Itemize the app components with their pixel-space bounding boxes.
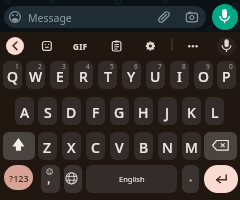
- button[interactable]: [108, 38, 124, 54]
- button[interactable]: G: [110, 97, 129, 125]
- button[interactable]: [3, 132, 35, 160]
- button[interactable]: [184, 38, 200, 54]
- button[interactable]: [142, 38, 158, 54]
- button[interactable]: K: [182, 97, 201, 125]
- button[interactable]: [204, 165, 238, 193]
- staticText: J: [165, 103, 170, 122]
- staticText: L: [211, 103, 219, 122]
- button[interactable]: D: [62, 97, 81, 125]
- staticText: 5: [110, 62, 114, 71]
- staticText: Y: [127, 67, 136, 86]
- button[interactable]: [204, 132, 237, 160]
- button[interactable]: English: [86, 165, 177, 193]
- staticText: X: [67, 138, 76, 157]
- staticText: N: [162, 138, 173, 157]
- staticText: 9: [206, 62, 210, 71]
- button[interactable]: ?123: [4, 165, 33, 190]
- button[interactable]: GIF: [69, 38, 92, 54]
- button[interactable]: Z: [38, 132, 57, 160]
- staticText: O: [198, 67, 209, 86]
- button[interactable]: E: [50, 61, 69, 89]
- button[interactable]: B: [134, 132, 153, 160]
- staticText: V: [115, 138, 124, 157]
- button[interactable]: C: [86, 132, 105, 160]
- button[interactable]: [217, 37, 236, 56]
- staticText: ?123: [9, 172, 29, 184]
- button[interactable]: A: [15, 97, 34, 125]
- button[interactable]: [182, 165, 199, 193]
- staticText: Q: [7, 67, 18, 86]
- staticText: 0: [229, 62, 233, 71]
- staticText: 1: [15, 62, 19, 71]
- staticText: D: [66, 103, 77, 122]
- staticText: E: [56, 67, 64, 86]
- staticText: S: [44, 103, 52, 122]
- button[interactable]: T: [98, 61, 117, 89]
- staticText: M: [185, 138, 198, 157]
- button[interactable]: M: [182, 132, 201, 160]
- button[interactable]: J: [158, 97, 177, 125]
- staticText: C: [91, 138, 100, 157]
- staticText: B: [139, 138, 149, 157]
- button[interactable]: [212, 4, 238, 30]
- staticText: 3: [62, 62, 66, 71]
- staticText: W: [29, 67, 43, 86]
- button[interactable]: R: [74, 61, 93, 89]
- button[interactable]: O: [194, 61, 213, 89]
- button[interactable]: Q: [3, 61, 22, 89]
- staticText: 7: [158, 62, 162, 71]
- staticText: I: [177, 67, 182, 86]
- staticText: U: [150, 67, 161, 86]
- staticText: Z: [43, 138, 52, 157]
- button[interactable]: [41, 165, 60, 193]
- button[interactable]: Y: [122, 61, 141, 89]
- staticText: P: [222, 67, 231, 86]
- staticText: H: [138, 103, 149, 122]
- staticText: English: [119, 174, 145, 184]
- staticText: 4: [86, 62, 90, 71]
- staticText: K: [187, 103, 196, 122]
- button[interactable]: S: [38, 97, 57, 125]
- staticText: 6: [134, 62, 138, 71]
- button[interactable]: W: [26, 61, 45, 89]
- staticText: Message: [28, 11, 72, 25]
- button[interactable]: I: [170, 61, 189, 89]
- button[interactable]: L: [205, 97, 224, 125]
- button[interactable]: X: [62, 132, 81, 160]
- button[interactable]: [6, 37, 24, 55]
- staticText: T: [104, 67, 112, 86]
- button[interactable]: [4, 6, 206, 28]
- button[interactable]: F: [86, 97, 105, 125]
- button[interactable]: V: [110, 132, 129, 160]
- staticText: GIF: [73, 41, 88, 52]
- button[interactable]: P: [217, 61, 236, 89]
- button[interactable]: [64, 165, 82, 193]
- staticText: 8: [182, 62, 186, 71]
- button[interactable]: H: [134, 97, 153, 125]
- button[interactable]: [39, 38, 55, 54]
- staticText: G: [114, 103, 125, 122]
- staticText: R: [79, 67, 88, 86]
- button[interactable]: U: [146, 61, 165, 89]
- button[interactable]: N: [158, 132, 177, 160]
- staticText: A: [20, 103, 30, 122]
- staticText: 2: [38, 62, 42, 71]
- staticText: F: [92, 103, 100, 122]
